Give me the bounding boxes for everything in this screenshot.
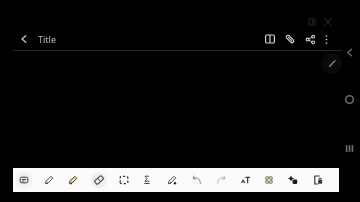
button[interactable]: AI assist	[261, 172, 277, 188]
button[interactable]: Back	[15, 30, 33, 48]
button[interactable]: Home	[340, 90, 359, 109]
button[interactable]: Selection	[116, 172, 132, 188]
staticText: Title	[38, 33, 56, 45]
button[interactable]: Text	[237, 172, 253, 188]
button[interactable]: Straighten	[139, 172, 155, 188]
button[interactable]: Restore window	[303, 13, 321, 31]
button[interactable]: Eraser	[91, 172, 107, 188]
button[interactable]: Close window	[319, 13, 337, 31]
button[interactable]: Pen	[41, 172, 57, 188]
button[interactable]: Redo	[213, 172, 229, 188]
button[interactable]: Attach	[281, 30, 299, 48]
button[interactable]: Share	[301, 30, 319, 48]
button[interactable]: More options	[317, 30, 335, 48]
button[interactable]: Undo	[189, 172, 205, 188]
button[interactable]: Highlighter	[65, 172, 81, 188]
button[interactable]: Shapes	[285, 172, 301, 188]
button[interactable]: Lock note	[310, 172, 326, 188]
button[interactable]: Pen tool	[321, 53, 342, 74]
button[interactable]: Recent apps	[340, 139, 359, 158]
button[interactable]: Reading view	[261, 30, 279, 48]
button[interactable]: Pen settings	[164, 172, 180, 188]
button[interactable]: Notes	[16, 172, 32, 188]
button[interactable]: Back	[340, 43, 359, 62]
